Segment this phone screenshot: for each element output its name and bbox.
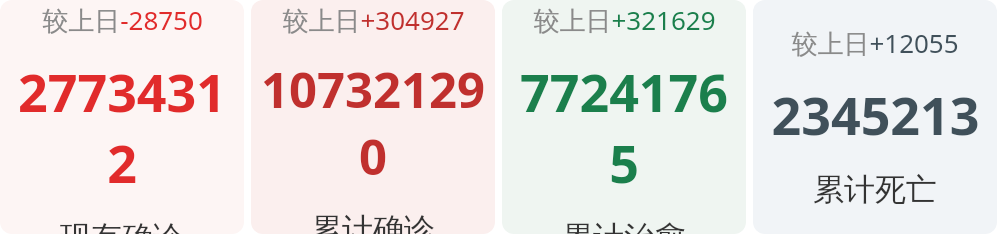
staticText: 2345213 bbox=[771, 79, 980, 150]
staticText: 累计确诊 bbox=[311, 210, 435, 234]
staticText: 较上日+321629 bbox=[533, 2, 716, 38]
staticText: 累计死亡 bbox=[813, 170, 937, 209]
staticText: 较上日+304927 bbox=[282, 2, 465, 38]
staticText: 累计治愈 bbox=[562, 218, 686, 234]
button[interactable]: 较上日+12055 bbox=[753, 0, 997, 234]
staticText: 107321290 bbox=[255, 56, 491, 190]
button[interactable]: 较上日-28750 bbox=[0, 0, 244, 234]
staticText: 较上日-28750 bbox=[42, 2, 203, 38]
button[interactable]: 较上日+321629 bbox=[502, 0, 746, 234]
staticText: 77241765 bbox=[506, 56, 742, 198]
staticText: 现有确诊 bbox=[60, 218, 184, 234]
staticText: 较上日+12055 bbox=[791, 25, 959, 61]
button[interactable]: 较上日+304927 bbox=[251, 0, 495, 234]
staticText: 27734312 bbox=[4, 56, 240, 198]
